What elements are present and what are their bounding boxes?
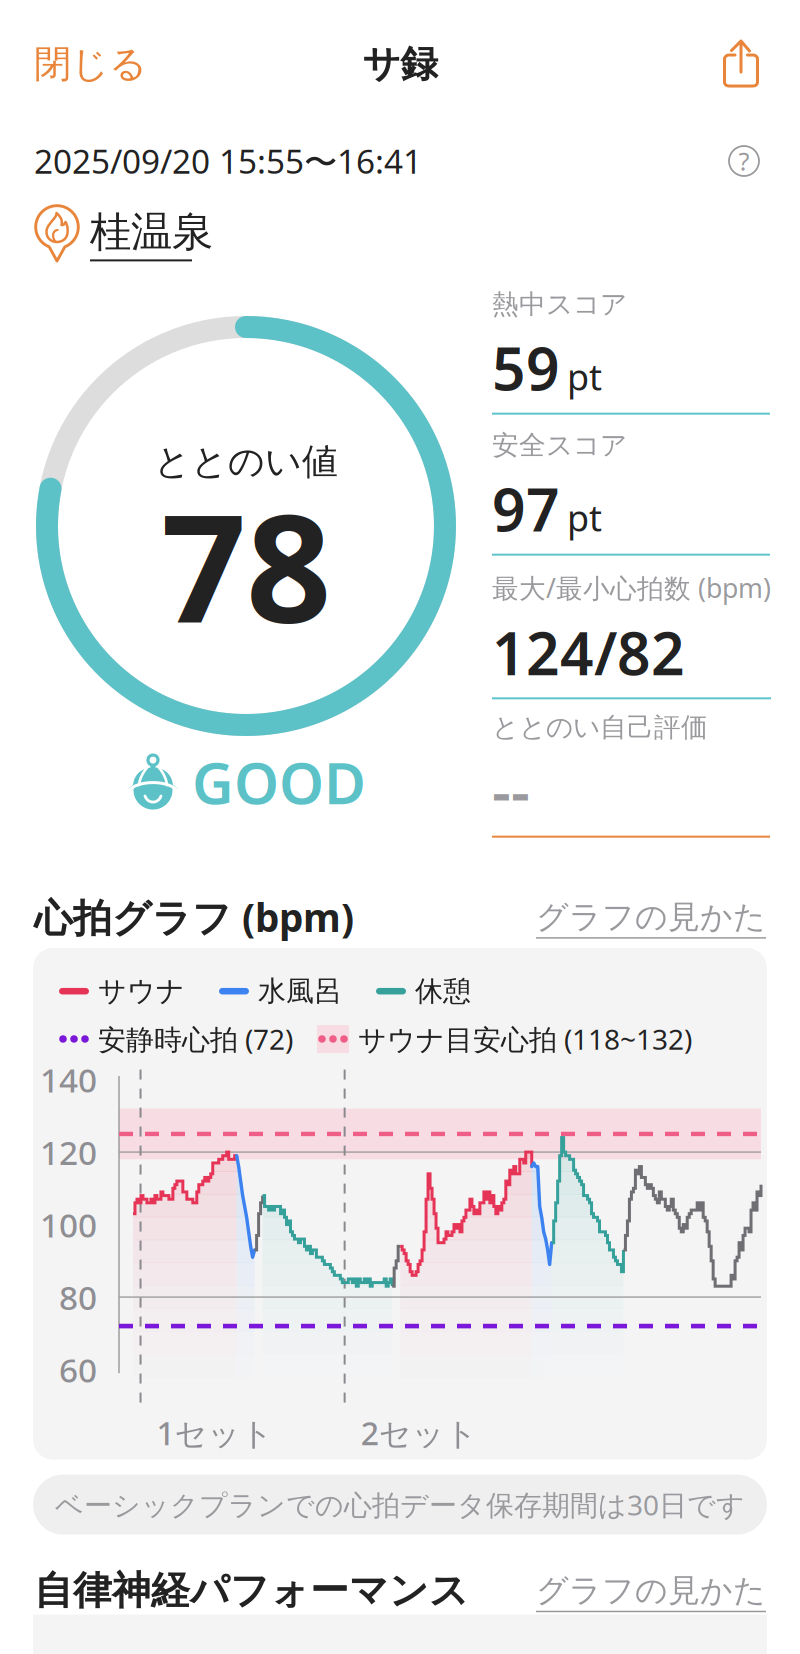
button[interactable]: Share <box>698 25 800 103</box>
staticText: 1セット <box>156 1412 273 1454</box>
button[interactable]: 閉じる <box>0 23 181 105</box>
staticText: pt <box>567 494 602 541</box>
staticText: 桂温泉 <box>90 207 213 257</box>
button[interactable]: グラフの見かた <box>536 1565 766 1616</box>
button[interactable]: グラフの見かた <box>536 891 766 943</box>
button[interactable]: Help <box>722 139 766 183</box>
staticText: 78 <box>161 466 331 664</box>
staticText: 140 <box>40 1057 97 1102</box>
staticText: pt <box>567 353 602 400</box>
staticText: 最大/最小心拍数 (bpm) <box>492 570 771 605</box>
staticText: 2025/09/20 15:55〜16:41 <box>34 139 422 183</box>
button[interactable]: 桂温泉 <box>34 204 213 264</box>
staticText: グラフの見かた <box>536 897 766 937</box>
staticText: 59 <box>492 329 560 407</box>
staticText: ととのい値 <box>154 440 338 484</box>
staticText: 自律神経パフォーマンス <box>34 1567 469 1614</box>
staticText: 安静時心拍 (72) <box>98 1020 293 1058</box>
staticText: サウナ <box>98 974 185 1008</box>
staticText: 120 <box>40 1130 97 1174</box>
staticText: ととのい自己評価 <box>492 711 708 744</box>
staticText: -- <box>492 752 530 830</box>
staticText: 水風呂 <box>258 974 342 1008</box>
staticText: 60 <box>59 1347 97 1392</box>
staticText: グラフの見かた <box>536 1571 766 1610</box>
staticText: 心拍グラフ (bpm) <box>34 891 354 943</box>
staticText: 安全スコア <box>492 429 627 462</box>
staticText: GOOD <box>192 744 366 820</box>
staticText: 124/82 <box>492 613 685 691</box>
staticText: 休憩 <box>415 974 471 1008</box>
staticText: ? <box>738 144 749 178</box>
staticText: 80 <box>59 1275 97 1319</box>
staticText: 2セット <box>361 1412 478 1454</box>
staticText: サウナ目安心拍 (118~132) <box>358 1020 692 1058</box>
staticText: 97 <box>492 470 560 548</box>
staticText: 閉じる <box>34 41 147 87</box>
staticText: 100 <box>40 1202 97 1247</box>
staticText: 熱中スコア <box>492 288 627 321</box>
staticText: サ録 <box>362 41 437 87</box>
staticText: ベーシックプランでの心拍データ保存期間は30日です <box>55 1486 745 1523</box>
